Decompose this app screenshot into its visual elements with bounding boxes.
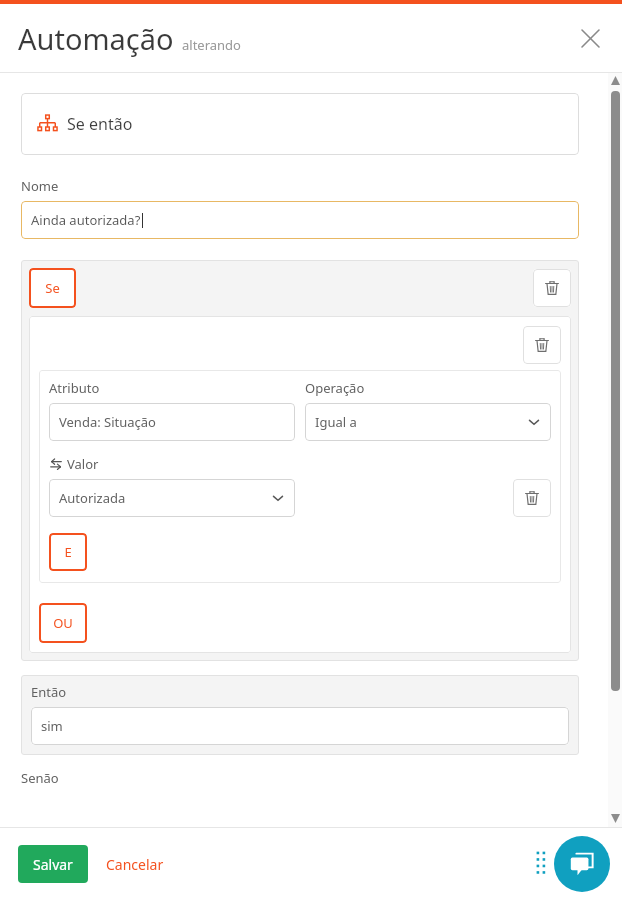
staticText: Nome [21,177,59,195]
staticText: Autorizada [59,489,126,507]
button[interactable]: Salvar [18,845,88,883]
button[interactable]: Autorizada [49,479,295,517]
staticText: Se então [67,113,133,135]
staticText: Venda: Situação [59,413,156,431]
button[interactable]: E [49,533,87,571]
staticText: alterando [182,36,241,54]
button[interactable]: Excluir [523,326,561,364]
button[interactable]: sim [31,707,569,745]
button[interactable]: OU [39,603,87,643]
staticText: OU [53,614,73,632]
button[interactable]: Rolar para cima [611,76,620,85]
staticText: Operação [305,379,365,397]
button[interactable]: Mover [534,849,550,879]
staticText: Se [45,279,60,297]
staticText: Atributo [49,379,100,397]
staticText: Automação [18,19,174,58]
staticText: Valor [67,455,99,473]
button[interactable]: Excluir [513,479,551,517]
staticText: Senão [21,769,59,787]
staticText: Então [31,683,67,701]
button[interactable]: Rolar para baixo [611,814,620,823]
staticText: Salvar [33,855,73,874]
staticText: Ainda autorizada? [31,211,141,229]
staticText: sim [41,717,63,735]
button[interactable]: Abrir chat [554,836,610,892]
staticText: Cancelar [106,855,164,874]
button[interactable]: Fechar [570,18,610,58]
staticText: Igual a [315,413,357,431]
button[interactable]: Excluir [533,269,571,307]
button[interactable]: Igual a [305,403,551,441]
staticText: E [64,543,72,561]
button[interactable]: Ainda autorizada? [21,201,579,239]
button[interactable]: Se [29,268,76,308]
button[interactable]: Venda: Situação [49,403,295,441]
button[interactable]: Cancelar [98,847,172,882]
button[interactable]: Se então [21,93,579,155]
